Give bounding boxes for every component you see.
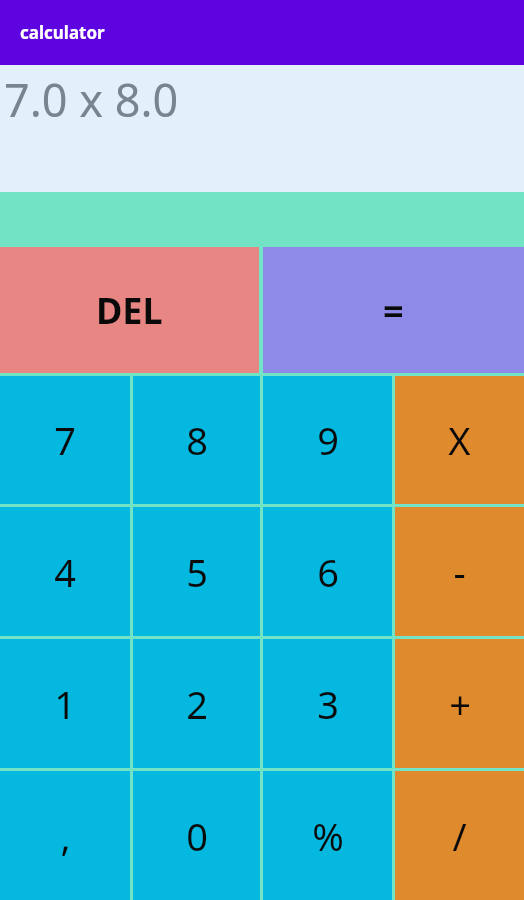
button[interactable]: 4 <box>0 507 130 636</box>
staticText: % <box>312 810 344 862</box>
staticText: 5 <box>186 546 208 598</box>
staticText: = <box>383 286 404 335</box>
staticText: 7.0 x 8.0 <box>4 69 179 130</box>
button[interactable]: / <box>395 771 524 900</box>
button[interactable]: , <box>0 771 130 900</box>
staticText: 6 <box>317 546 339 598</box>
button[interactable]: 2 <box>133 639 260 768</box>
button[interactable]: + <box>395 639 524 768</box>
staticText: 1 <box>54 678 76 730</box>
staticText: 0 <box>186 810 208 862</box>
button[interactable]: 0 <box>133 771 260 900</box>
staticText: 8 <box>186 414 208 466</box>
staticText: 9 <box>317 414 339 466</box>
staticText: 2 <box>186 678 208 730</box>
button[interactable]: 1 <box>0 639 130 768</box>
staticText: 3 <box>317 678 339 730</box>
button[interactable]: 6 <box>263 507 392 636</box>
staticText: / <box>452 810 467 862</box>
button[interactable]: 8 <box>133 376 260 504</box>
button[interactable]: - <box>395 507 524 636</box>
staticText: 7 <box>54 414 76 466</box>
button[interactable]: 3 <box>263 639 392 768</box>
staticText: , <box>60 810 71 862</box>
button[interactable]: = <box>263 247 524 373</box>
button[interactable]: % <box>263 771 392 900</box>
staticText: 4 <box>54 546 76 598</box>
staticText: calculator <box>20 21 105 44</box>
staticText: + <box>449 678 471 730</box>
staticText: X <box>448 414 471 466</box>
button[interactable]: X <box>395 376 524 504</box>
button[interactable]: 7 <box>0 376 130 504</box>
button[interactable]: 5 <box>133 507 260 636</box>
staticText: - <box>453 546 466 598</box>
button[interactable]: DEL <box>0 247 259 373</box>
button[interactable]: 9 <box>263 376 392 504</box>
staticText: DEL <box>96 286 163 335</box>
